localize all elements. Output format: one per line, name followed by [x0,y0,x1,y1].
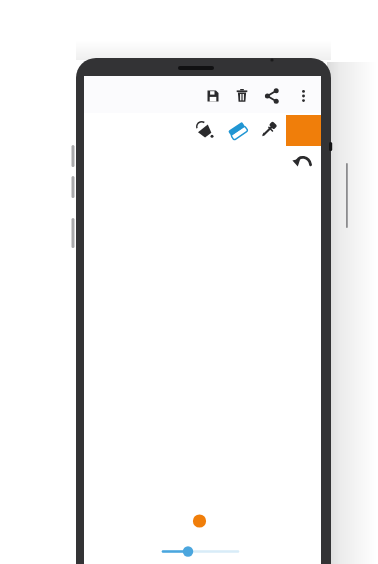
button[interactable]: Share [259,84,287,110]
button[interactable]: Eraser [225,117,255,143]
button[interactable]: Undo [288,149,318,175]
button[interactable]: Current color [285,114,321,146]
button[interactable]: More options [292,84,316,110]
button[interactable]: Brush preview [186,508,214,536]
button[interactable]: Delete [228,84,254,110]
button[interactable]: Brush size [158,543,244,561]
button[interactable]: Color picker [256,117,283,143]
button[interactable]: Save [197,84,223,110]
button[interactable]: Fill with color [192,117,220,143]
